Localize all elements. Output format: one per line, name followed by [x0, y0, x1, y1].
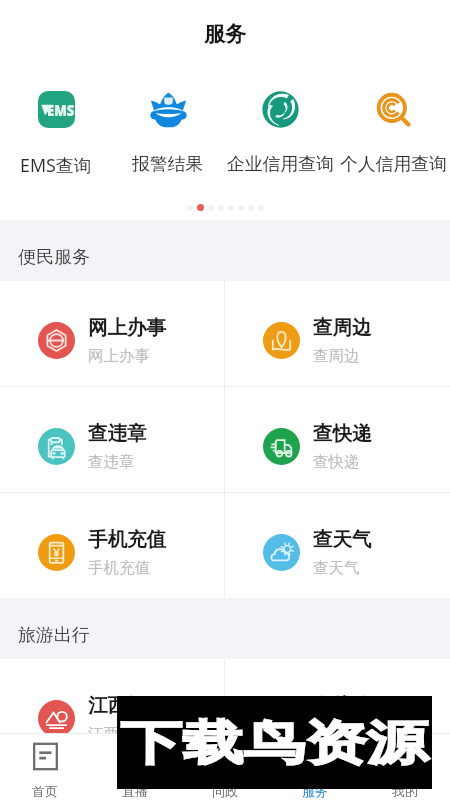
- staticText: 查周边: [313, 315, 372, 340]
- staticText: 手机充值: [88, 558, 150, 578]
- staticText: 查天气: [313, 558, 360, 578]
- staticText: 问政: [212, 783, 238, 799]
- staticText: EMS: [47, 100, 75, 120]
- staticText: 在线购票: [313, 724, 375, 744]
- other: 问政: [212, 743, 239, 770]
- staticText: 网上办事: [88, 346, 150, 366]
- other: 我的: [392, 743, 419, 770]
- staticText: 在线购票: [313, 693, 391, 718]
- button[interactable]: 查违章: [0, 387, 224, 492]
- button[interactable]: 查快递: [225, 387, 450, 492]
- staticText: 服务: [204, 21, 246, 47]
- other: 直播: [122, 743, 149, 770]
- other: 服务: [302, 743, 329, 770]
- staticText: 下载鸟资源: [121, 713, 428, 772]
- staticText: 查周边: [313, 346, 360, 366]
- staticText: 查违章: [88, 452, 135, 472]
- staticText: 我的: [392, 783, 418, 799]
- button[interactable]: 个人信用查询: [337, 67, 450, 186]
- staticText: EMS查询: [20, 153, 92, 177]
- button[interactable]: 在线购票: [225, 659, 450, 764]
- staticText: 查快递: [313, 421, 372, 446]
- button[interactable]: 网上办事: [0, 281, 224, 386]
- staticText: 报警结果: [132, 153, 204, 175]
- button[interactable]: EMS: [0, 67, 112, 186]
- staticText: 首页: [32, 783, 58, 799]
- button[interactable]: 我的: [360, 734, 450, 800]
- staticText: 手机充值: [88, 527, 166, 552]
- staticText: 个人信用查询: [340, 153, 447, 175]
- staticText: 企业信用查询: [227, 153, 334, 175]
- staticText: 直播: [122, 783, 148, 799]
- staticText: 江西旅游: [88, 724, 150, 744]
- staticText: 服务: [302, 783, 328, 799]
- button[interactable]: 查天气: [225, 493, 450, 598]
- button[interactable]: 企业信用查询: [224, 67, 337, 186]
- staticText: 江西旅游: [88, 693, 166, 718]
- button[interactable]: 查周边: [225, 281, 450, 386]
- staticText: 查天气: [313, 527, 372, 552]
- staticText: 网上办事: [88, 315, 166, 340]
- staticText: 便民服务: [18, 246, 90, 269]
- button[interactable]: 直播: [90, 734, 180, 800]
- staticText: 查违章: [88, 421, 147, 446]
- button[interactable]: 报警结果: [112, 67, 224, 186]
- staticText: 旅游出行: [18, 624, 90, 647]
- button[interactable]: 服务: [270, 734, 360, 800]
- button[interactable]: 问政: [180, 734, 270, 800]
- other: 首页: [32, 743, 59, 770]
- button[interactable]: 江西旅游: [0, 659, 224, 764]
- button[interactable]: 首页: [0, 734, 90, 800]
- staticText: 查快递: [313, 452, 360, 472]
- button[interactable]: 手机充值: [0, 493, 224, 598]
